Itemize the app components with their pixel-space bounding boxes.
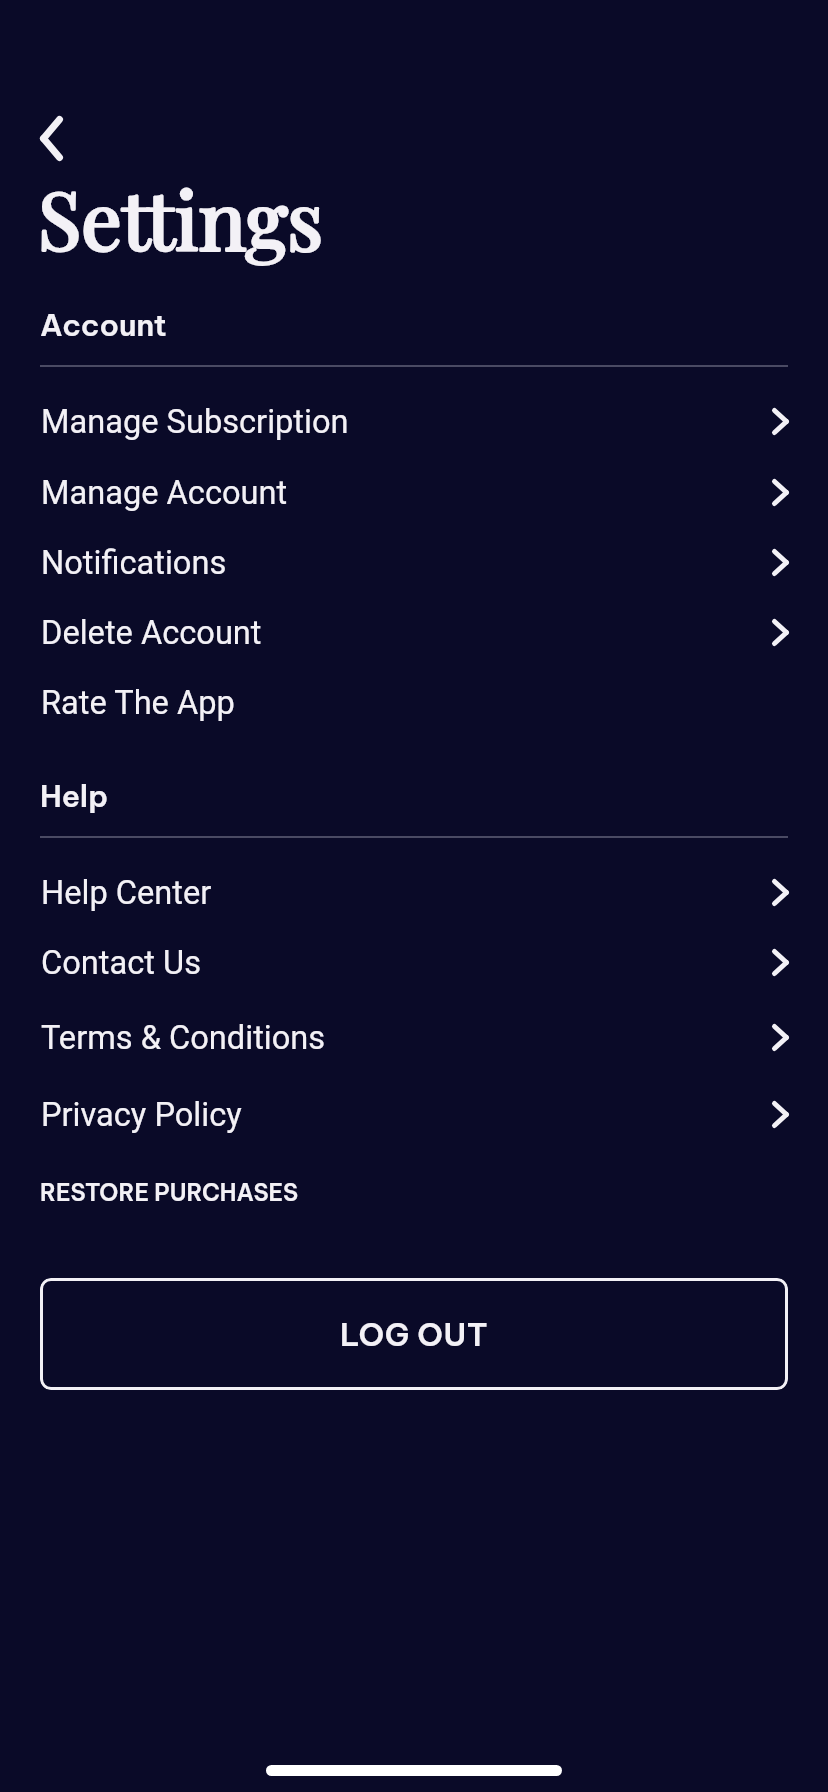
staticText: Help	[40, 777, 109, 815]
staticText: Contact Us	[41, 944, 201, 982]
button[interactable]: Contact Us	[0, 927, 828, 997]
staticText: Settings	[38, 163, 324, 270]
staticText: Manage Account	[41, 474, 288, 512]
button[interactable]: Delete Account	[0, 597, 828, 667]
button[interactable]: Privacy Policy	[0, 1079, 828, 1149]
staticText: Help Center	[41, 874, 212, 912]
button[interactable]: LOG OUT	[40, 1278, 788, 1390]
staticText: Manage Subscription	[41, 403, 349, 441]
staticText: LOG OUT	[340, 1315, 489, 1354]
staticText: RESTORE PURCHASES	[40, 1178, 299, 1207]
staticText: Settings	[38, 163, 324, 270]
button[interactable]: Help Center	[0, 857, 828, 927]
button[interactable]: Back	[12, 110, 92, 168]
staticText: Notifications	[41, 544, 227, 582]
button[interactable]: RESTORE PURCHASES	[0, 1165, 828, 1219]
staticText: Account	[40, 306, 167, 344]
button[interactable]: Notifications	[0, 527, 828, 597]
staticText: Terms & Conditions	[41, 1019, 326, 1057]
button[interactable]: Manage Account	[0, 457, 828, 527]
button[interactable]: Manage Subscription	[0, 386, 828, 456]
button[interactable]: Terms & Conditions	[0, 1002, 828, 1072]
staticText: Delete Account	[41, 614, 262, 652]
staticText: Privacy Policy	[41, 1096, 242, 1134]
button[interactable]: Rate The App	[0, 667, 828, 737]
staticText: Rate The App	[41, 684, 235, 722]
